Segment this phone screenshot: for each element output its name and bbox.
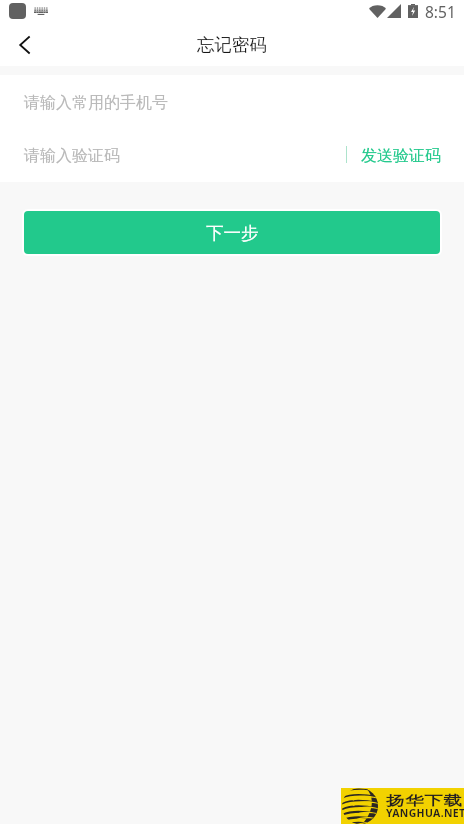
staticText: YANGHUA.NET [386,806,464,820]
staticText: 请输入常用的手机号 [24,93,168,113]
staticText: 忘记密码 [197,34,267,56]
staticText: 发送验证码 [361,146,441,166]
button[interactable]: 发送验证码 [347,128,464,182]
button[interactable]: 请输入常用的手机号 [0,75,464,128]
staticText: 8:51 [425,1,456,22]
button[interactable]: Back [0,26,44,66]
button[interactable]: 下一步 [24,211,440,254]
button[interactable]: 请输入验证码 [0,128,346,182]
staticText: 扬华下载 [386,792,463,808]
staticText: 请输入验证码 [24,146,120,166]
staticText: 下一步 [206,222,259,244]
